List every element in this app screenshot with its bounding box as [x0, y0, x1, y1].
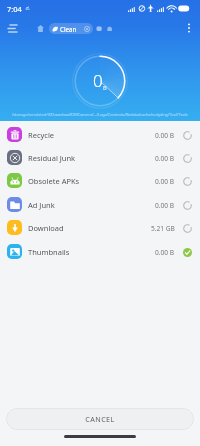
- button[interactable]: More options: [180, 19, 198, 37]
- staticText: 0.00 B: [155, 177, 175, 186]
- staticText: Obsolete APKs: [28, 176, 80, 186]
- button[interactable]: Ad Junk: [0, 197, 200, 212]
- staticText: 0.00 B: [155, 201, 175, 210]
- staticText: Recycle: [28, 130, 55, 140]
- button[interactable]: CANCEL: [6, 408, 194, 430]
- staticText: Ad Junk: [28, 200, 55, 210]
- button[interactable]: Thumbnails: [0, 244, 200, 259]
- staticText: B: [103, 84, 107, 91]
- staticText: 0.00 B: [155, 131, 175, 140]
- staticText: CANCEL: [85, 414, 115, 424]
- staticText: 0: [93, 69, 103, 92]
- button[interactable]: Residual Junk: [0, 150, 200, 165]
- staticText: 7:04: [7, 4, 22, 14]
- button[interactable]: Download: [0, 220, 200, 235]
- button[interactable]: Clean: [49, 23, 93, 34]
- staticText: 0.00 B: [155, 248, 175, 257]
- button[interactable]: Menu: [4, 20, 20, 36]
- staticText: Residual Junk: [28, 153, 76, 163]
- button[interactable]: Home: [35, 23, 45, 33]
- staticText: /storage/emulated/0/Download/DMCamera/…/…: [0, 112, 200, 117]
- button[interactable]: Obsolete APKs: [0, 173, 200, 188]
- staticText: 0.00 B: [155, 154, 175, 163]
- button[interactable]: Recycle: [0, 127, 200, 142]
- staticText: Thumbnails: [28, 247, 70, 257]
- staticText: 5.21 GB: [151, 224, 175, 233]
- staticText: Download: [28, 223, 64, 233]
- staticText: Clean: [60, 25, 77, 33]
